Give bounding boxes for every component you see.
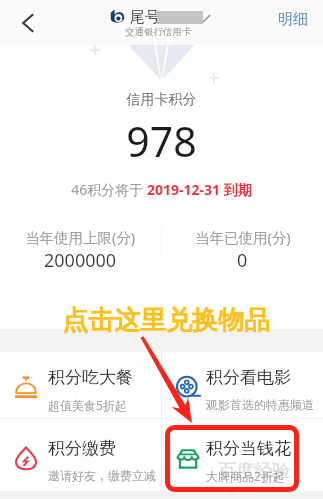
staticText: 尾号 (130, 8, 160, 27)
staticText: 积分吃大餐 (48, 367, 133, 388)
staticText: 超值美食5折起 (48, 397, 127, 413)
button[interactable]: Back (6, 1, 50, 45)
staticText: 46积分将于 2019-12-31 到期 (0, 180, 323, 199)
button[interactable]: 积分看电影 (162, 352, 323, 418)
staticText: jingyan.baidu.com (218, 483, 288, 494)
staticText: 积分当钱花 (206, 438, 291, 459)
staticText: 百度经验 (218, 460, 290, 483)
staticText: 当年已使用(分) (195, 227, 291, 247)
staticText: 当年使用上限(分) (25, 227, 136, 247)
button[interactable]: 积分缴费 (0, 419, 161, 491)
button[interactable]: 积分吃大餐 (0, 352, 161, 418)
staticText: 2000000 (44, 248, 117, 273)
button[interactable]: 积分当钱花 (162, 419, 323, 491)
staticText: 邀请好友，缴费立减 (48, 468, 156, 483)
staticText: 点击这里兑换物品 (62, 304, 270, 337)
staticText: 978 (0, 113, 323, 169)
button[interactable]: 明细 (263, 4, 323, 35)
staticText: 大牌商品2折起 (206, 468, 285, 484)
staticText: 积分缴费 (48, 438, 116, 459)
staticText: 观影首选的特惠频道 (206, 397, 314, 412)
staticText: 信用卡积分 (0, 91, 323, 109)
staticText: 0 (237, 248, 248, 273)
staticText: 积分看电影 (206, 367, 291, 388)
staticText: 明细 (278, 10, 308, 29)
staticText: 交通银行信用卡 (125, 26, 192, 38)
